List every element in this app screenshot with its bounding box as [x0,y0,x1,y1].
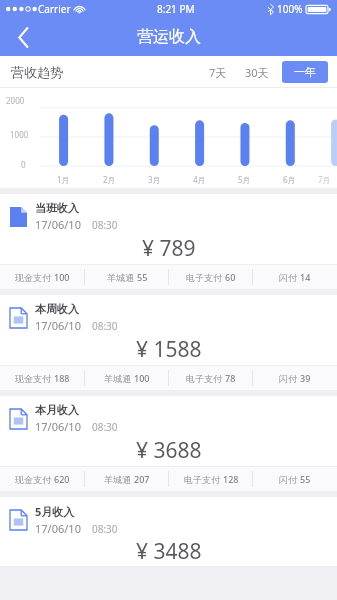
button[interactable]: 30天 [239,62,275,83]
button[interactable]: 一年 [282,61,328,83]
button[interactable]: 当班收入 [0,194,337,290]
staticText: 电子支付 [186,373,222,384]
staticText: 闪付 [279,474,297,485]
staticText: 电子支付 [186,272,222,283]
staticText: ¥ 1588 [136,335,202,364]
staticText: 08:30 [92,319,118,333]
staticText: ¥ 3688 [136,436,202,465]
staticText: 08:30 [92,420,118,434]
staticText: 17/06/10 [35,318,81,333]
button[interactable]: 5月收入 [0,497,337,566]
staticText: 现金支付 [15,373,51,384]
staticText: 128 [223,473,239,485]
staticText: 羊城通 [104,373,131,384]
staticText: 100 [54,271,70,283]
staticText: 08:30 [92,218,118,232]
staticText: 营收趋势 [11,64,63,80]
staticText: 6月 [283,174,296,185]
staticText: 08:30 [92,522,118,536]
staticText: 78 [225,372,236,384]
staticText: 188 [54,372,70,384]
staticText: 39 [300,372,311,384]
staticText: 闪付 [279,373,297,384]
staticText: Carrier [38,2,71,16]
staticText: 0 [21,159,26,170]
button[interactable]: 7天 [203,62,233,83]
staticText: 1000 [10,129,29,140]
staticText: 100 [134,372,150,384]
staticText: 羊城通 [104,474,131,485]
button[interactable]: 本周收入 [0,295,337,391]
staticText: 620 [54,473,70,485]
staticText: 2月 [103,174,116,185]
staticText: 本月收入 [35,403,79,417]
staticText: 电子支付 [184,474,220,485]
staticText: 8:21 PM [157,2,195,16]
staticText: 30天 [245,65,269,80]
staticText: 营运收入 [137,27,201,47]
staticText: 100% [277,2,303,16]
staticText: 5月 [238,174,251,185]
staticText: 55 [300,473,311,485]
staticText: 207 [134,473,150,485]
staticText: 羊城通 [107,272,134,283]
staticText: 14 [300,271,311,283]
staticText: 本周收入 [35,302,79,316]
staticText: 当班收入 [35,201,79,215]
staticText: 闪付 [279,272,297,283]
staticText: 1月 [57,174,70,185]
staticText: 4月 [193,174,206,185]
staticText: ¥ 3488 [136,537,202,566]
staticText: 7天 [209,65,227,80]
staticText: 60 [225,271,236,283]
staticText: 17/06/10 [35,521,81,536]
button[interactable]: Back [0,18,46,56]
staticText: 一年 [294,65,316,79]
staticText: 7月 [318,174,331,185]
staticText: 现金支付 [15,272,51,283]
staticText: 17/06/10 [35,217,81,232]
staticText: ¥ 789 [142,234,196,263]
staticText: 3月 [148,174,161,185]
staticText: 2000 [6,95,25,106]
button[interactable]: 本月收入 [0,396,337,492]
staticText: 55 [137,271,148,283]
staticText: 17/06/10 [35,419,81,434]
staticText: 现金支付 [15,474,51,485]
staticText: 5月收入 [35,504,75,519]
